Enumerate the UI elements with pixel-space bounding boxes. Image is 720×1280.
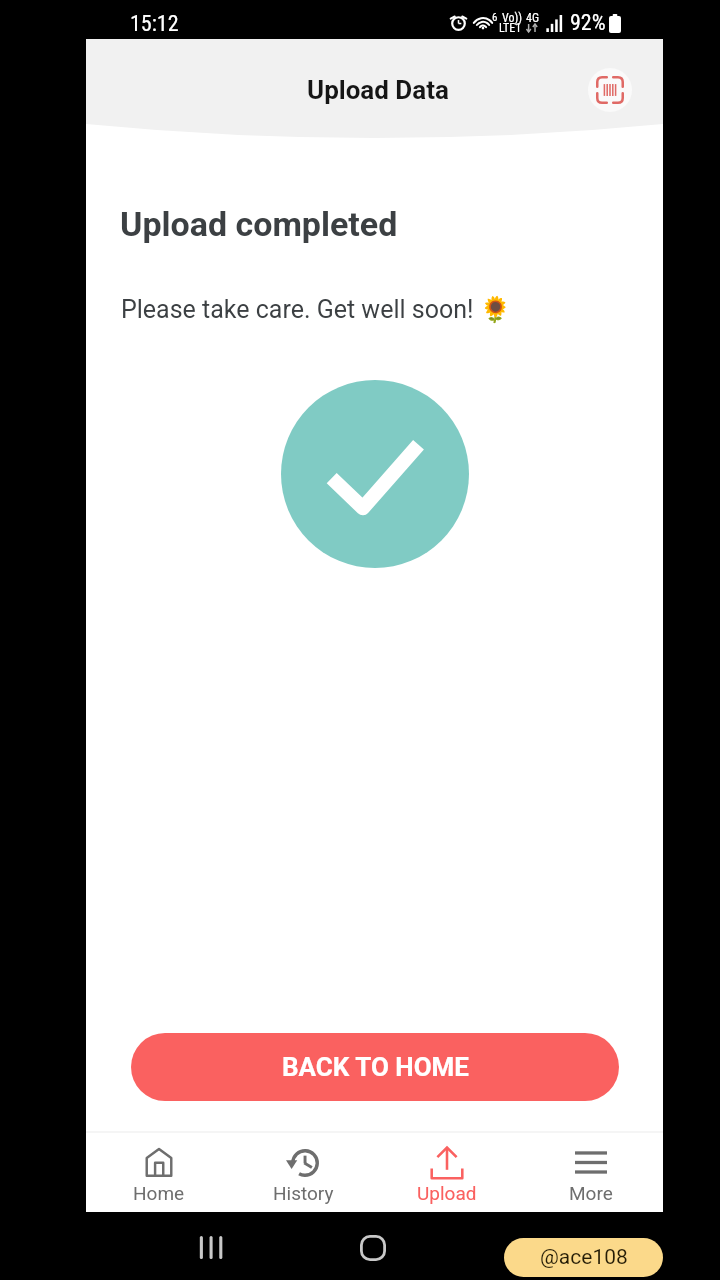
staticText: Upload Data xyxy=(307,75,449,105)
staticText: 15:12 xyxy=(130,11,179,37)
staticText: BACK TO HOME xyxy=(282,1052,469,1082)
staticText: 92% xyxy=(570,10,606,36)
staticText: More xyxy=(569,1182,613,1204)
button[interactable]: History xyxy=(231,1124,375,1212)
staticText: Upload xyxy=(417,1182,477,1204)
button[interactable]: Upload xyxy=(375,1124,519,1212)
staticText: 4G xyxy=(526,11,540,25)
staticText: @ace108 xyxy=(540,1245,628,1270)
button[interactable]: Home xyxy=(86,1124,231,1212)
button[interactable]: BACK TO HOME xyxy=(131,1033,619,1101)
staticText: History xyxy=(273,1182,334,1204)
staticText: Upload completed xyxy=(120,204,398,244)
staticText: Vo)) xyxy=(502,11,523,25)
staticText: 6 xyxy=(492,11,498,24)
button[interactable]: More xyxy=(519,1124,663,1212)
staticText: Please take care. Get well soon! 🌻 xyxy=(121,295,511,324)
button[interactable]: Scan barcode xyxy=(584,64,636,116)
staticText: LTE1 xyxy=(499,21,522,35)
staticText: Home xyxy=(133,1182,185,1204)
